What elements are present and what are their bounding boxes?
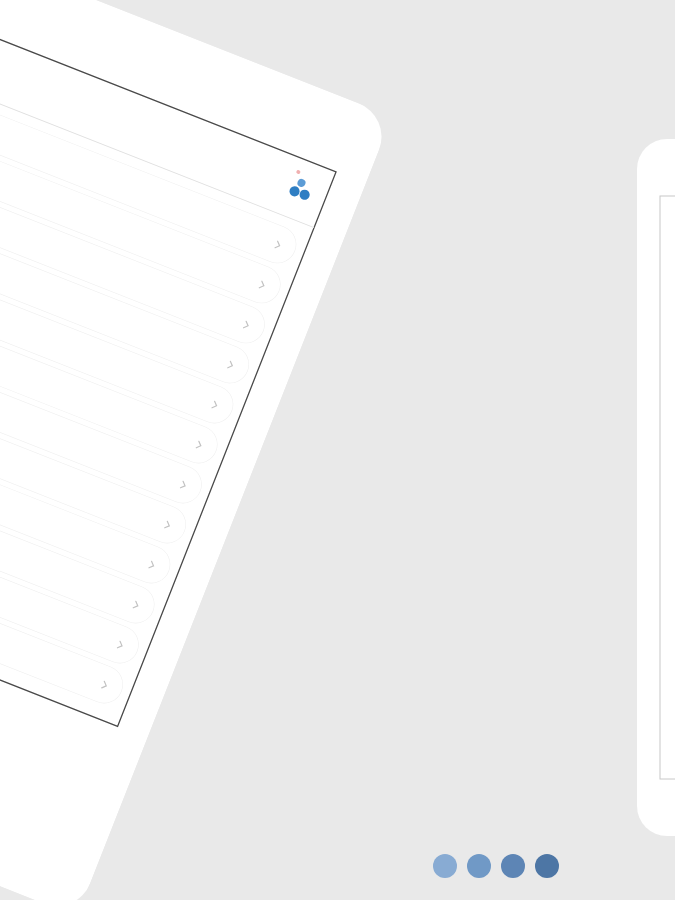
button[interactable] xyxy=(0,120,286,309)
button[interactable] xyxy=(467,854,491,878)
button[interactable]: Ewangelia Mateusza 3:1-12 xyxy=(0,400,176,589)
button[interactable]: Ewangelia Mateusza 1:18-25 xyxy=(0,280,223,469)
button[interactable]: Ewangelia Mateusza 4:4-11 xyxy=(0,520,129,709)
button[interactable] xyxy=(535,854,559,878)
button[interactable]: Ewangelia Mateusza 3:13-17 xyxy=(0,440,160,629)
button[interactable]: Ewangelia Mateusza 2:1-12 xyxy=(0,320,207,509)
button[interactable]: Ewangelia Mateusza 2:13-23 xyxy=(0,360,192,549)
button[interactable]: Ewangelia Mateusza 4:1-3 xyxy=(0,480,144,669)
button[interactable]: Accounts xyxy=(284,173,318,207)
button[interactable]: Wprowadzenie xyxy=(0,160,270,349)
button[interactable] xyxy=(0,80,302,269)
button[interactable]: Ewangelia Mateusza 1:1-6 xyxy=(0,200,255,389)
button[interactable] xyxy=(433,854,457,878)
button[interactable]: Ewangelia Mateusza 1:7-17 xyxy=(0,240,239,429)
button[interactable] xyxy=(501,854,525,878)
